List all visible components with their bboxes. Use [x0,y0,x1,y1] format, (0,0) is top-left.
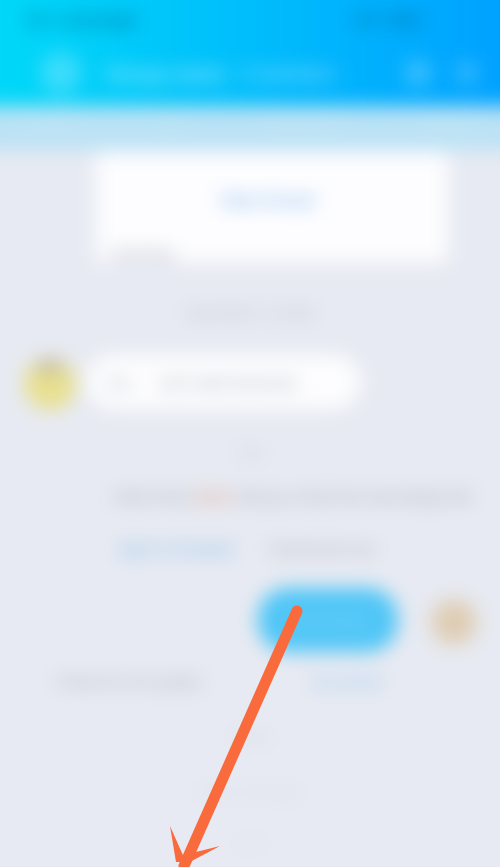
button[interactable]: Sure thing! [258,588,398,652]
button[interactable]: Call [406,61,430,85]
button[interactable]: View thread [220,188,315,211]
button[interactable]: Back [40,52,82,94]
staticText: Group name [106,60,226,87]
staticText: Overview [20,112,77,130]
button[interactable]: Ann [86,355,361,409]
staticText: Yesterday [110,244,174,262]
staticText: Today [232,727,269,745]
staticText: 5 members [240,61,337,86]
button[interactable]: Chat [156,106,185,136]
staticText: Members [421,112,480,130]
staticText: Chat [156,112,185,130]
button[interactable]: Overview [20,106,77,136]
button[interactable]: More options [456,62,478,84]
staticText: 9:41 messenger [26,10,139,29]
staticText: Attachments [264,112,342,130]
button[interactable]: Attachments [264,106,342,136]
button[interactable]: Members [421,106,480,136]
staticText: View thread [220,188,315,211]
staticText: Sure thing! [292,611,364,630]
staticText: LTE 100% [354,10,422,29]
staticText: Write a message [199,782,301,800]
